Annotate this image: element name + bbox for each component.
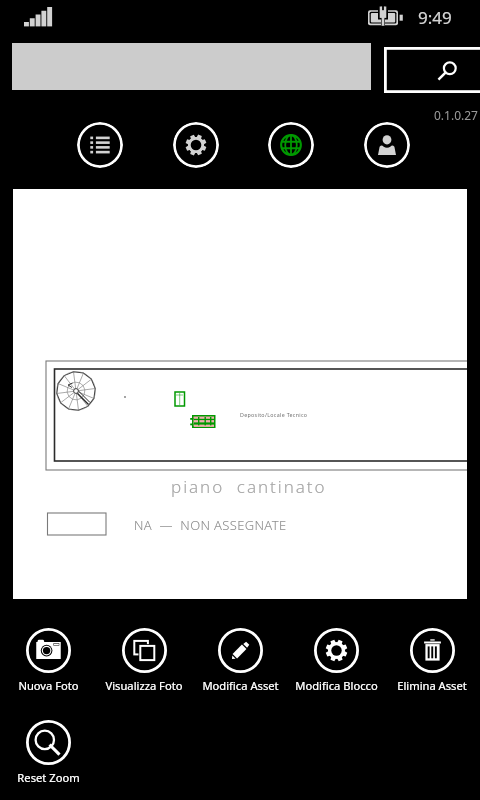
button[interactable]: Visualizza Foto xyxy=(96,628,192,706)
button[interactable]: Reset Zoom xyxy=(0,720,96,798)
button[interactable]: Account xyxy=(364,122,410,168)
button[interactable]: Elimina Asset xyxy=(384,628,480,706)
staticText: Modifica Asset xyxy=(202,678,279,693)
staticText: Nuova Foto xyxy=(18,678,79,693)
staticText: Reset Zoom xyxy=(17,770,80,785)
staticText: 9:49 xyxy=(418,6,452,29)
button[interactable]: Nuova Foto xyxy=(0,628,96,706)
button[interactable]: Modifica Blocco xyxy=(288,628,384,706)
staticText: Deposito/Locale Tecnico xyxy=(240,411,308,418)
staticText: piano cantinato xyxy=(171,475,327,498)
button[interactable]: List xyxy=(77,122,123,168)
staticText: 0.1.0.27 xyxy=(434,107,478,123)
staticText: Visualizza Foto xyxy=(105,678,183,693)
button[interactable]: Globe xyxy=(268,122,314,168)
staticText: NA — NON ASSEGNATE xyxy=(134,516,287,534)
staticText: Modifica Blocco xyxy=(295,678,378,693)
button[interactable]: Settings xyxy=(173,122,219,168)
button[interactable]: Modifica Asset xyxy=(192,628,288,706)
staticText: Elimina Asset xyxy=(397,678,467,693)
button[interactable]: Search xyxy=(384,47,480,93)
